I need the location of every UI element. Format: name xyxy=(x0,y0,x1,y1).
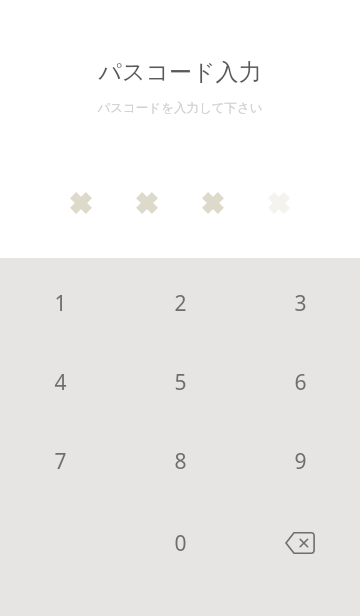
button[interactable]: 6 xyxy=(240,354,360,410)
button[interactable]: 3 xyxy=(240,275,360,331)
button[interactable]: 0 xyxy=(120,515,240,571)
staticText: 0 xyxy=(174,529,187,558)
staticText: 5 xyxy=(174,368,187,397)
button[interactable]: 8 xyxy=(120,433,240,489)
staticText: 8 xyxy=(174,447,187,476)
staticText: 1 xyxy=(54,289,67,318)
staticText: 4 xyxy=(54,368,67,397)
button[interactable]: 7 xyxy=(0,433,120,489)
staticText: 9 xyxy=(294,447,307,476)
staticText: 3 xyxy=(294,289,307,318)
staticText: パスコード入力 xyxy=(98,58,262,87)
button[interactable]: 5 xyxy=(120,354,240,410)
button[interactable]: 4 xyxy=(0,354,120,410)
staticText: パスコードを入力して下さい xyxy=(97,100,263,116)
button[interactable]: 2 xyxy=(120,275,240,331)
staticText: 2 xyxy=(174,289,187,318)
staticText: 7 xyxy=(54,447,67,476)
button[interactable]: 1 xyxy=(0,275,120,331)
staticText: 6 xyxy=(294,368,307,397)
button[interactable]: 9 xyxy=(240,433,360,489)
button[interactable]: Delete xyxy=(240,515,360,571)
